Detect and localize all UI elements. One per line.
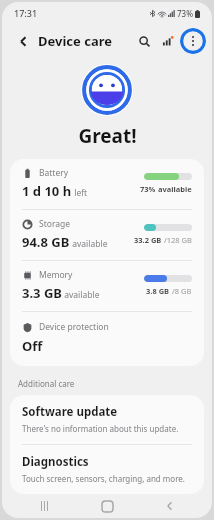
staticText: Storage (39, 218, 71, 230)
button[interactable]: Memory (10, 261, 204, 311)
button[interactable]: Back (12, 30, 34, 52)
staticText: 73% (140, 184, 156, 194)
staticText: /8 GB (170, 286, 192, 296)
staticText: Battery (39, 167, 69, 179)
staticText: available (156, 184, 192, 194)
button[interactable]: Search (132, 29, 156, 53)
staticText: /128 GB (162, 235, 192, 245)
button[interactable]: Home (86, 494, 128, 518)
staticText: 17:31 (14, 7, 38, 19)
button[interactable]: Recent apps (23, 494, 65, 518)
staticText: 3.8 GB (146, 286, 170, 296)
staticText: 3.3 GB (22, 284, 62, 302)
staticText: available (70, 238, 108, 250)
staticText: Touch screen, sensors, charging, and mor… (22, 473, 185, 484)
staticText: available (62, 289, 100, 301)
staticText: There's no information about this update… (22, 423, 179, 434)
staticText: Diagnostics (22, 454, 89, 470)
button[interactable]: More options (180, 28, 206, 54)
staticText: Software update (22, 404, 118, 420)
staticText: Additional care (18, 378, 75, 389)
staticText: Memory (39, 269, 73, 281)
staticText: 33.2 GB (134, 235, 162, 245)
staticText: Off (22, 337, 43, 355)
staticText: 73% (177, 8, 193, 19)
button[interactable]: Device protection (10, 312, 204, 366)
staticText: left (72, 187, 88, 199)
staticText: 1 d 10 h (22, 182, 72, 200)
staticText: Device care (38, 32, 112, 50)
button[interactable]: Diagnostics (10, 445, 204, 494)
button[interactable]: Battery (10, 159, 204, 209)
button[interactable]: Usage statistics (156, 29, 180, 53)
staticText: 94.8 GB (22, 233, 70, 251)
staticText: Great! (78, 123, 137, 149)
button[interactable]: Software update (10, 395, 204, 444)
button[interactable]: Storage (10, 210, 204, 260)
staticText: Device protection (39, 321, 109, 333)
button[interactable]: Back (149, 494, 191, 518)
